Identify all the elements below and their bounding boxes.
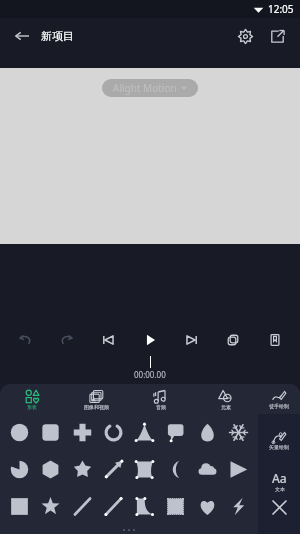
button[interactable]: Drop [194, 419, 221, 446]
button[interactable]: Triangle [131, 419, 158, 446]
staticText: Alight Motion [113, 81, 177, 95]
button[interactable]: 形状 [0, 384, 64, 414]
staticText: 音频 [156, 404, 166, 410]
staticText: 图像和视频 [84, 404, 109, 410]
button[interactable]: 图像和视频 [64, 384, 128, 414]
button[interactable]: Line [69, 493, 96, 520]
button[interactable]: Square [6, 493, 33, 520]
button[interactable]: RoundRect [37, 419, 64, 446]
button[interactable]: Close [264, 492, 294, 522]
button[interactable]: Back [9, 23, 35, 49]
staticText: 文本 [275, 486, 285, 492]
button[interactable]: Export [263, 22, 291, 50]
button[interactable]: Pac [6, 456, 33, 483]
button[interactable]: ArcC [100, 419, 127, 446]
staticText: 元素 [221, 404, 231, 410]
button[interactable]: Line2 [100, 493, 127, 520]
staticText: 形状 [27, 404, 37, 410]
button[interactable]: 矢量绘制 [269, 430, 289, 450]
button[interactable]: Bolt [225, 493, 252, 520]
staticText: 12:05 [268, 2, 294, 16]
button[interactable]: Stamp [162, 493, 189, 520]
button[interactable]: Skip to end [179, 327, 205, 353]
button[interactable]: 元素 [193, 384, 258, 414]
button[interactable]: Speech [162, 419, 189, 446]
button[interactable]: 徒手绘制 [258, 384, 300, 414]
button[interactable]: Curve [131, 493, 158, 520]
button[interactable]: Star5 [37, 493, 64, 520]
button[interactable]: 音频 [128, 384, 193, 414]
staticText: 00:00.00 [134, 369, 166, 380]
button[interactable]: Settings [231, 22, 259, 50]
staticText: 新项目 [41, 29, 74, 43]
button[interactable]: Alight Motion [102, 79, 198, 97]
button[interactable]: Redo [54, 327, 80, 353]
button[interactable]: Quad [131, 456, 158, 483]
staticText: 矢量绘制 [269, 444, 289, 450]
button[interactable]: Moon [162, 456, 189, 483]
button[interactable]: Hex [37, 456, 64, 483]
button[interactable]: Play [137, 327, 163, 353]
button[interactable]: Loop [220, 327, 246, 353]
button[interactable]: Heart [194, 493, 221, 520]
button[interactable]: Cross [69, 419, 96, 446]
button[interactable]: PlayTri [225, 456, 252, 483]
button[interactable]: Undo [12, 327, 38, 353]
button[interactable]: Skip to start [95, 327, 121, 353]
button[interactable]: Star5b [69, 456, 96, 483]
button[interactable]: Aa [272, 470, 287, 492]
button[interactable]: Cloud [194, 456, 221, 483]
staticText: Aa [272, 470, 287, 486]
button[interactable]: Bookmark [262, 327, 288, 353]
button[interactable]: Arrow [100, 456, 127, 483]
button[interactable]: Circle [6, 419, 33, 446]
button[interactable]: Snow [225, 419, 252, 446]
staticText: 徒手绘制 [269, 403, 289, 409]
